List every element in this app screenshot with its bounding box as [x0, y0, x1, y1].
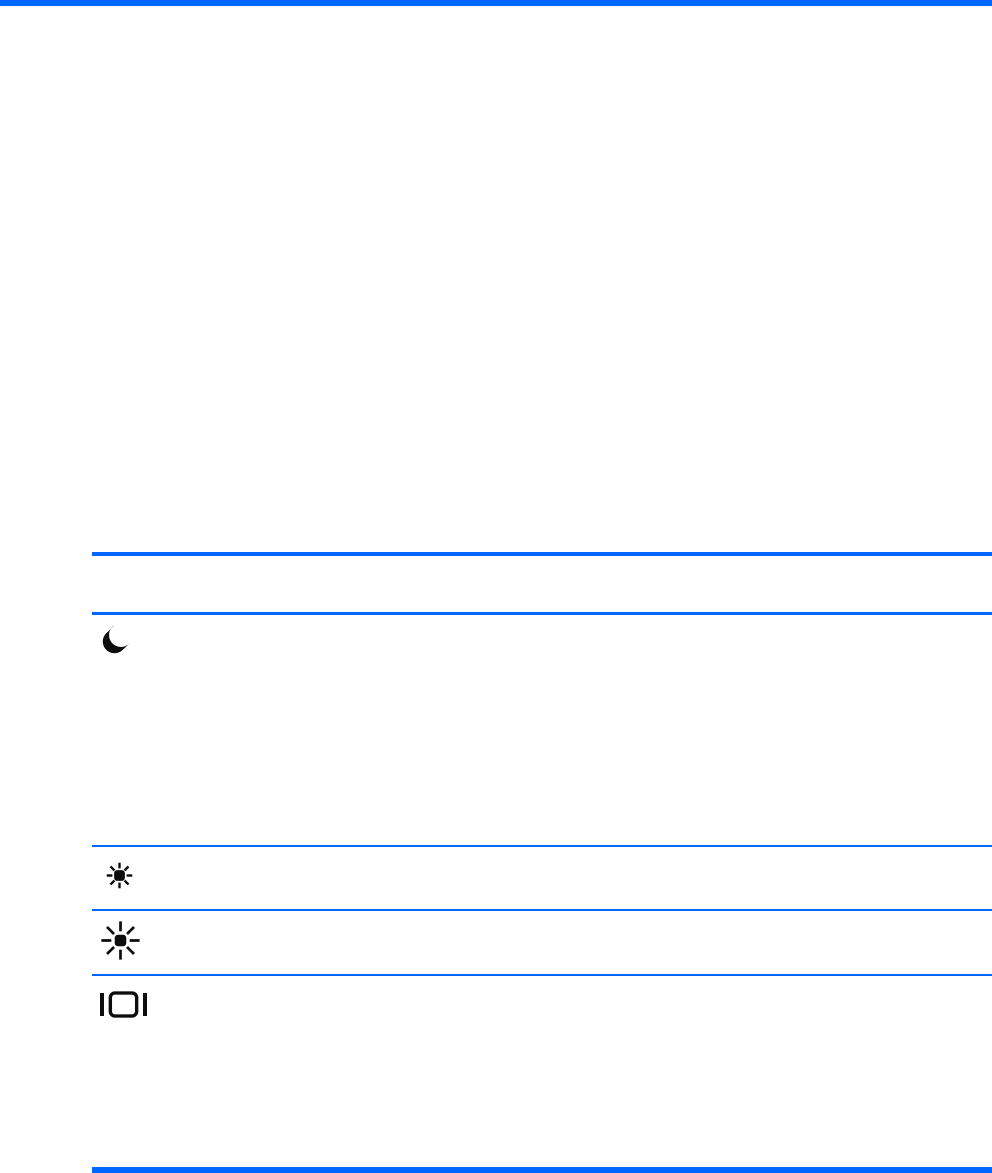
- button[interactable]: Sleep: [92, 615, 242, 845]
- button[interactable]: Increase screen brightness: [92, 911, 242, 974]
- button[interactable]: Decrease screen brightness: [92, 847, 242, 909]
- button[interactable]: Switch screen image: [92, 976, 242, 1036]
